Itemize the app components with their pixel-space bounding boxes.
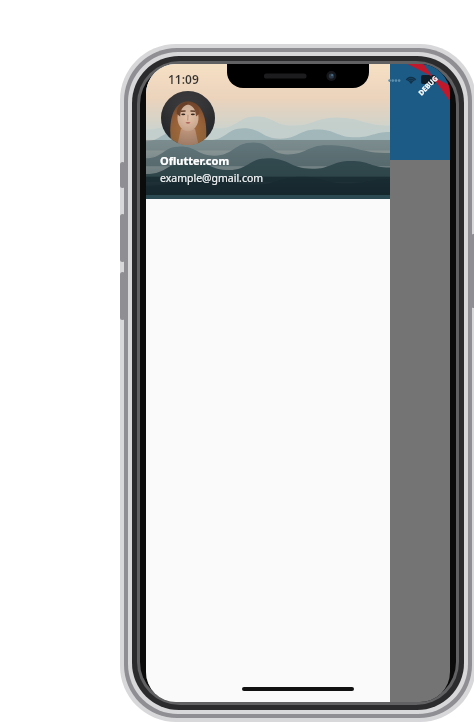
staticText: 11:09 [168,71,199,87]
staticText: DEBUG [416,74,441,98]
staticText: example@gmail.com [160,171,264,185]
staticText: Oflutter.com [160,153,230,168]
button[interactable]: Oflutter.com [146,64,390,195]
button[interactable]: Profile photo [161,91,215,145]
